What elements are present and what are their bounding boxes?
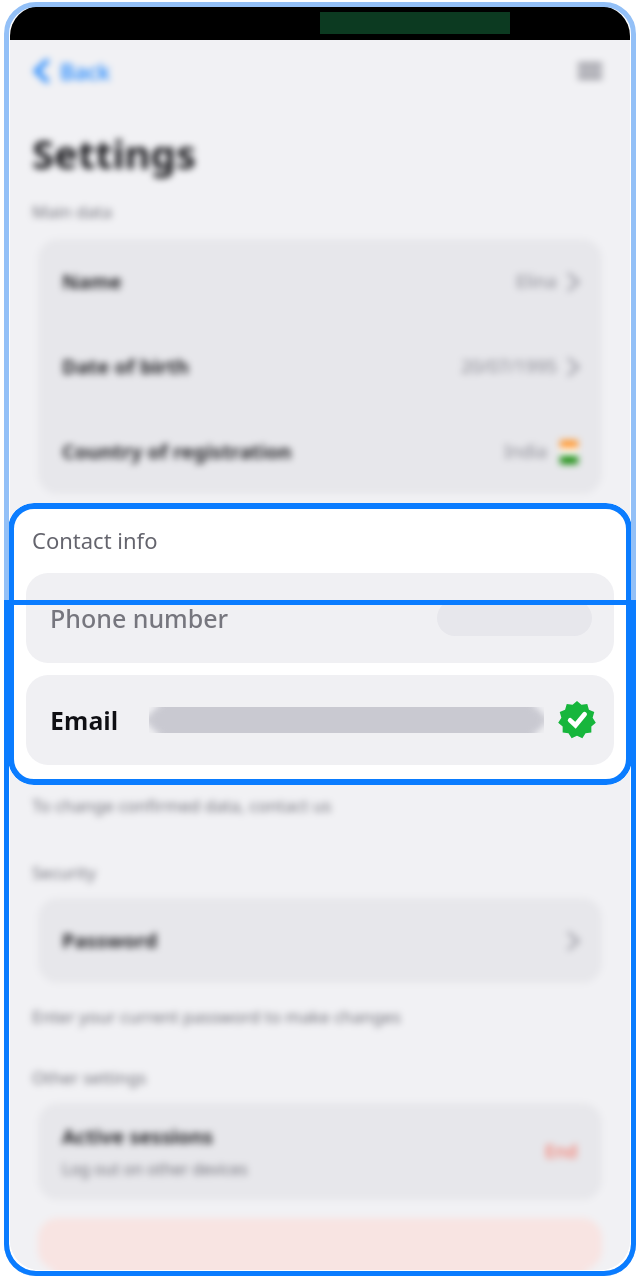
staticText: Active sessions (62, 1123, 213, 1150)
staticText: Main data (32, 200, 112, 223)
staticText: Phone number (50, 601, 229, 635)
button[interactable]: Menu (572, 53, 608, 89)
staticText: Contact info (32, 525, 158, 555)
button[interactable]: Active sessions (38, 1103, 602, 1200)
staticText: Settings (32, 126, 196, 180)
button[interactable]: Password (38, 898, 602, 983)
button[interactable]: Contact info (8, 503, 632, 785)
staticText: Back (60, 56, 111, 86)
staticText: India (504, 439, 548, 464)
staticText: Email (50, 703, 119, 737)
staticText: Date of birth (62, 353, 190, 380)
other: Verified email (558, 701, 596, 739)
staticText: Name (62, 268, 122, 295)
staticText: Log out on other devices (62, 1158, 248, 1180)
button[interactable]: Date of birth (38, 324, 602, 409)
button[interactable]: Phone number (26, 573, 614, 663)
button[interactable]: Name (38, 239, 602, 324)
staticText: Enter your current password to make chan… (32, 1005, 401, 1028)
staticText: To change confirmed data, contact us (32, 794, 332, 817)
button[interactable]: Email (26, 675, 614, 765)
button[interactable]: Country of registration (38, 409, 602, 494)
staticText: Elina (516, 269, 557, 294)
staticText: Other settings (32, 1066, 147, 1089)
staticText: 20/07/1995 (461, 354, 557, 379)
staticText: Password (62, 927, 158, 954)
staticText: Security (32, 861, 96, 884)
staticText: Country of registration (62, 438, 292, 465)
button[interactable]: Back (32, 52, 115, 90)
staticText: End (545, 1139, 578, 1164)
